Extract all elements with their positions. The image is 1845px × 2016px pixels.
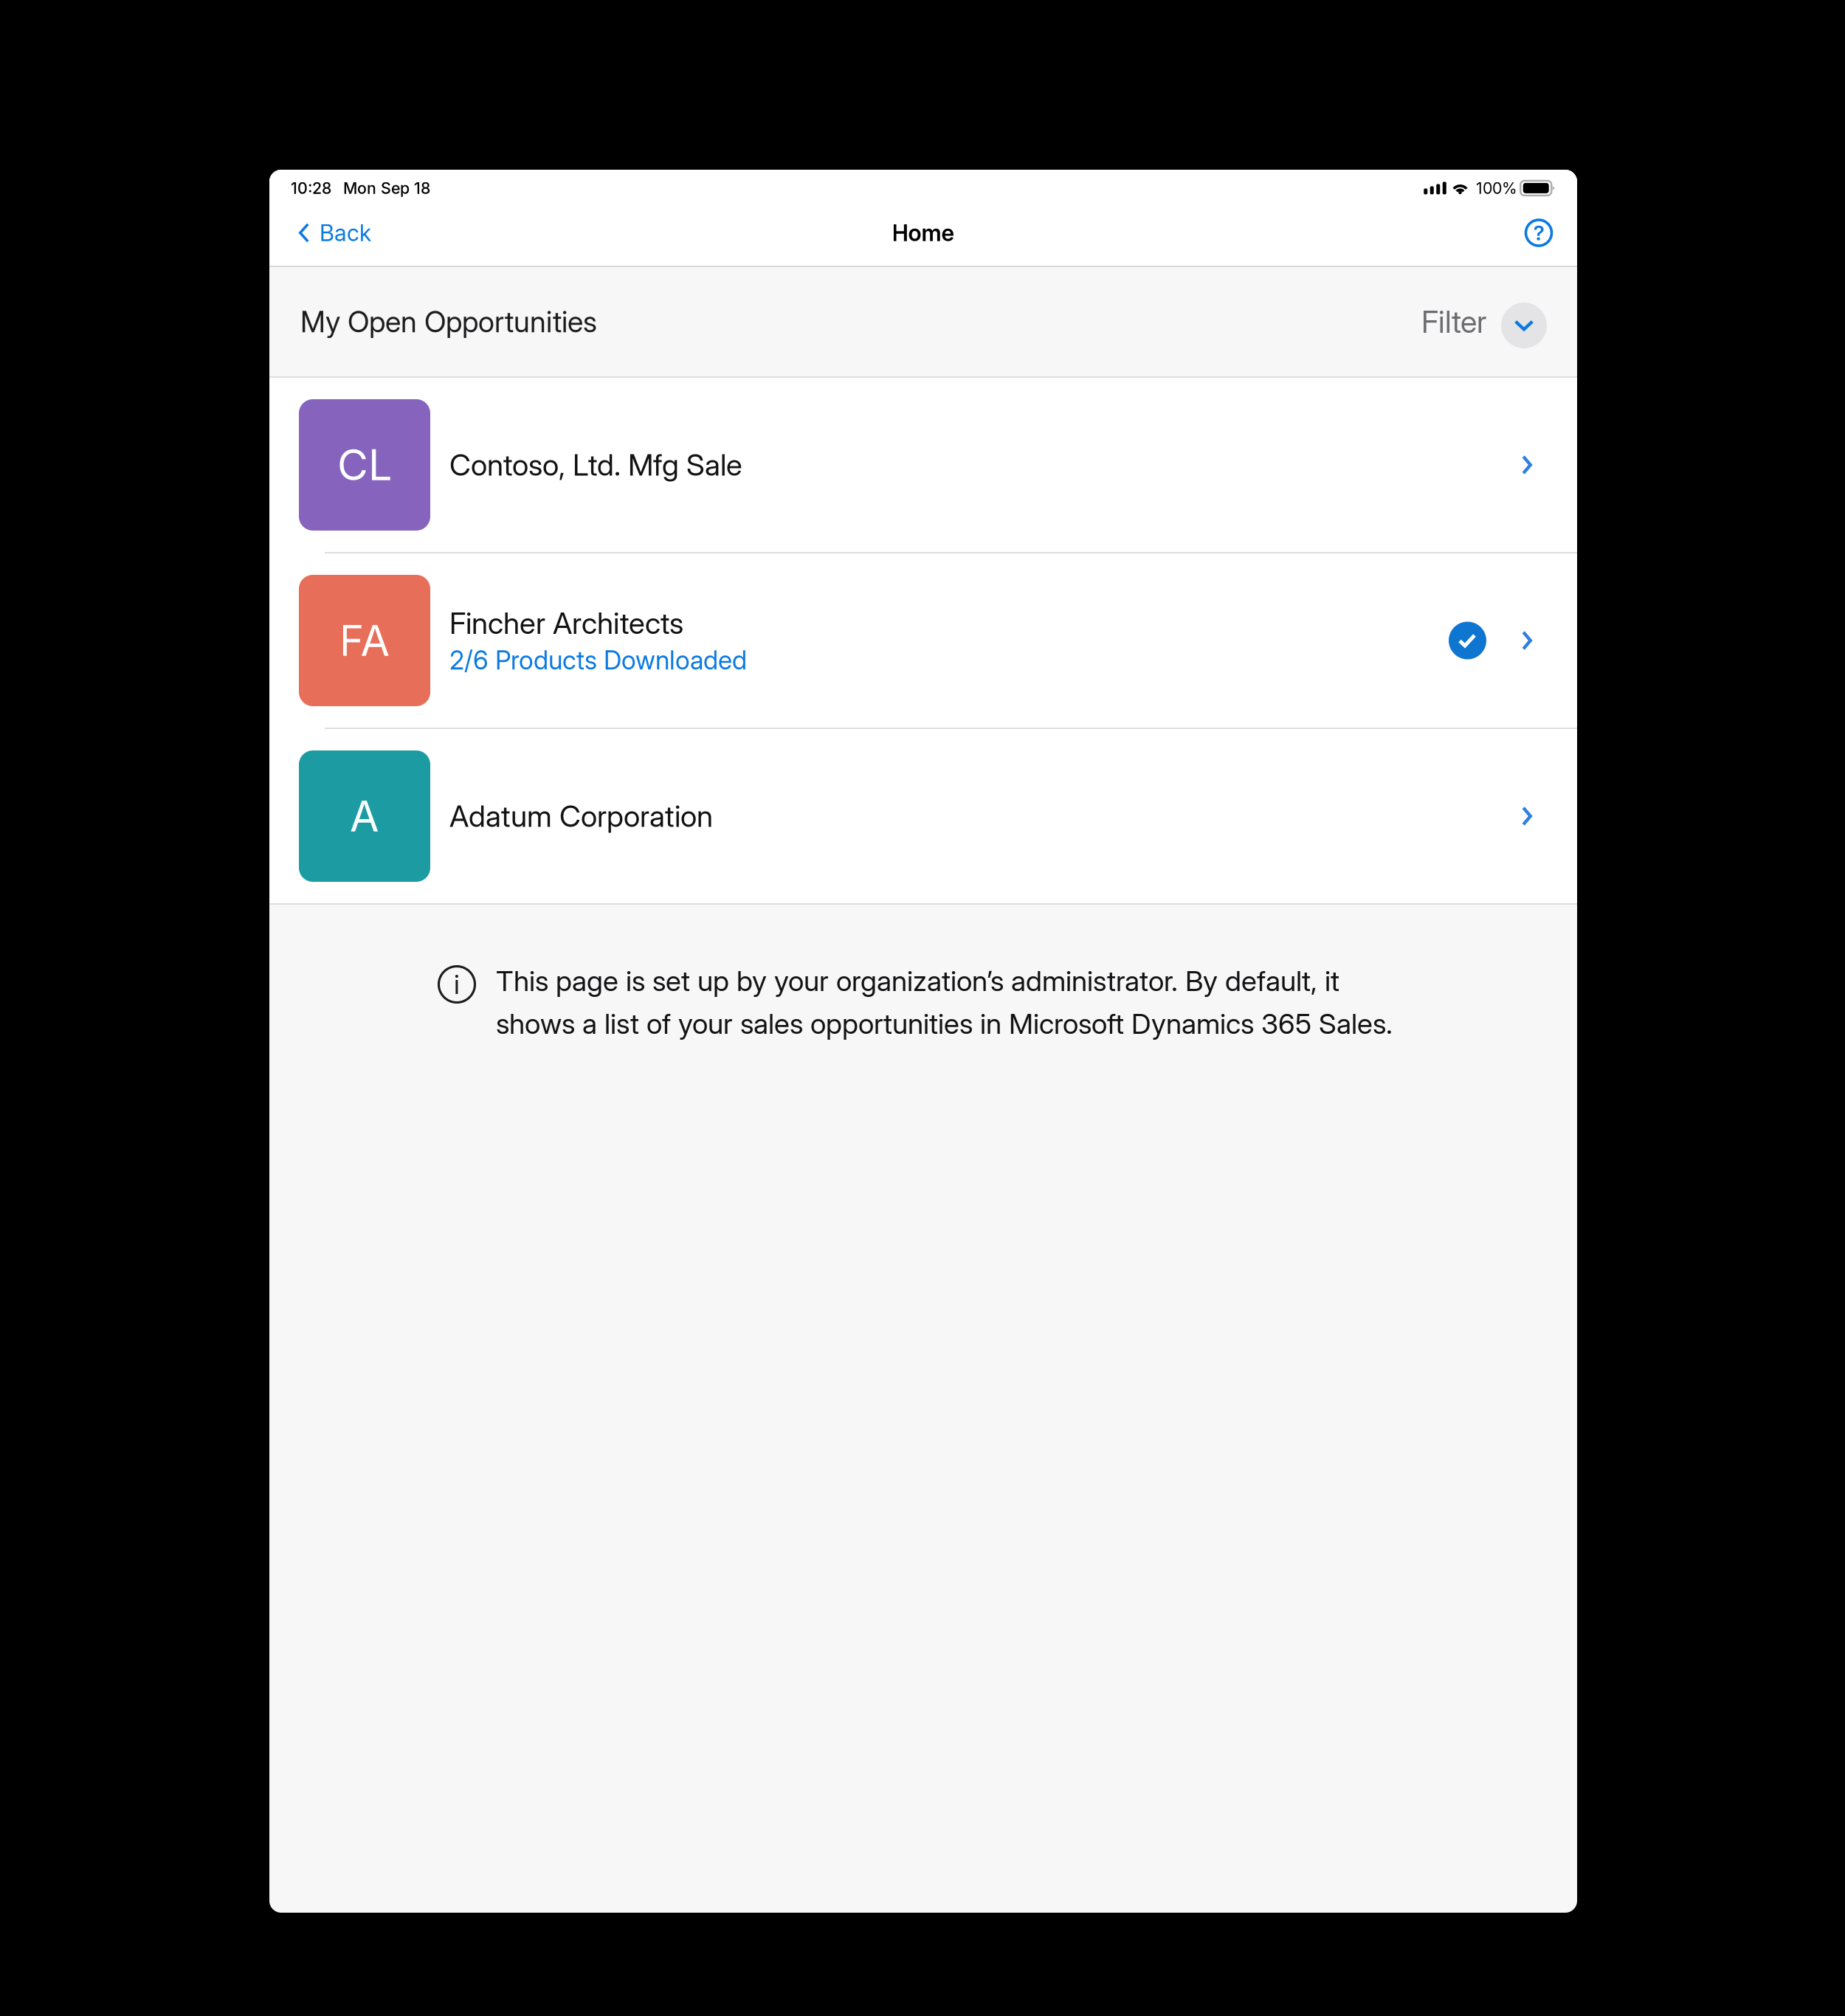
staticText: CL [337,439,392,490]
staticText: shows a list of your sales opportunities… [496,1007,1393,1041]
button[interactable]: Back [269,200,389,266]
staticText: Filter [1421,303,1486,340]
staticText: Back [320,219,371,246]
staticText: ? [1533,220,1544,245]
button[interactable]: Help [1506,200,1577,266]
button[interactable]: A [269,729,1577,903]
staticText: Home [892,219,955,246]
button[interactable]: FA [269,553,1577,728]
staticText: 100% [1476,179,1517,198]
staticText: FA [339,615,390,666]
staticText: 10:28 [291,179,331,198]
button[interactable]: CL [269,378,1577,552]
staticText: i [454,968,460,1000]
staticText: A [350,791,379,842]
staticText: 2/6 Products Downloaded [449,645,747,676]
staticText: Adatum Corporation [449,798,713,834]
staticText: This page is set up by your organization… [496,964,1339,998]
staticText: My Open Opportunities [300,304,597,339]
button[interactable]: Filter [1421,295,1547,348]
staticText: Mon Sep 18 [343,179,430,198]
staticText: Fincher Architects [449,605,683,641]
staticText: Contoso, Ltd. Mfg Sale [449,447,742,483]
